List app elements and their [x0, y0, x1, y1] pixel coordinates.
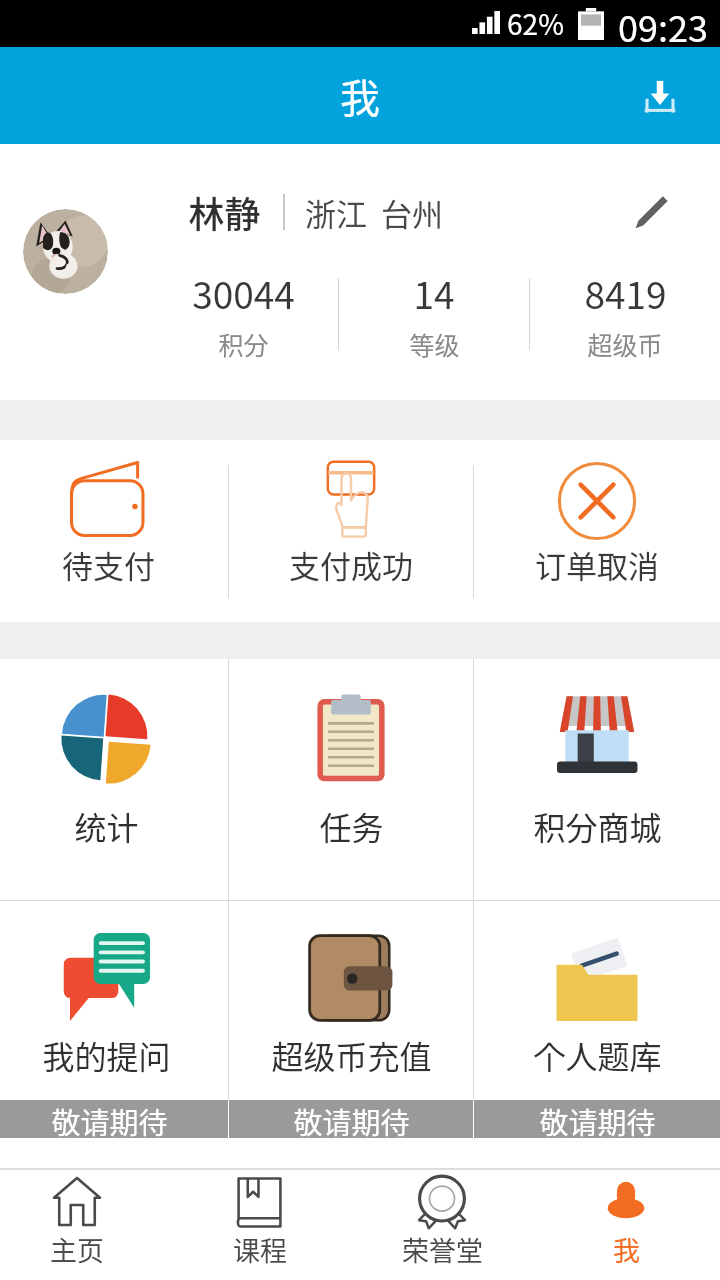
staticText: 超级币充值 [271, 1032, 432, 1078]
button[interactable]: Avatar [23, 209, 108, 294]
button[interactable]: 积分商城 [474, 659, 720, 900]
staticText: 敬请期待 [539, 1100, 656, 1138]
staticText: 积分商城 [533, 803, 662, 849]
button[interactable]: 待支付 [0, 440, 228, 622]
staticText: 我 [340, 67, 380, 125]
button[interactable]: Download [634, 70, 686, 122]
button[interactable]: 14 [339, 259, 529, 369]
staticText: 14 [413, 266, 455, 320]
staticText: 个人题库 [533, 1032, 662, 1078]
button[interactable]: 课程 [167, 1170, 352, 1280]
staticText: 待支付 [62, 542, 155, 587]
staticText: 我 [613, 1230, 640, 1269]
button[interactable]: 支付成功 [229, 440, 473, 622]
button[interactable]: 主页 [0, 1170, 153, 1280]
staticText: 敬请期待 [51, 1100, 168, 1138]
button[interactable]: 30044 [148, 259, 338, 369]
staticText: 任务 [319, 803, 384, 849]
staticText: 62% [507, 3, 564, 44]
staticText: 林静 [188, 186, 261, 238]
button[interactable]: 订单取消 [474, 440, 720, 622]
button[interactable]: 超级币充值 [229, 901, 473, 1100]
staticText: 8419 [584, 266, 667, 320]
button[interactable]: 我的提问 [0, 901, 228, 1100]
button[interactable]: 统计 [0, 659, 228, 900]
staticText: 主页 [50, 1230, 104, 1269]
staticText: 荣誉堂 [402, 1230, 483, 1269]
button[interactable]: 荣誉堂 [352, 1170, 532, 1280]
button[interactable]: 8419 [530, 259, 720, 369]
staticText: 积分 [218, 326, 269, 362]
staticText: 等级 [409, 326, 460, 362]
button[interactable]: Edit profile [624, 184, 680, 240]
staticText: 超级币 [587, 326, 663, 362]
staticText: 浙江 台州 [305, 190, 443, 235]
staticText: 09:23 [618, 0, 708, 47]
staticText: 支付成功 [289, 542, 413, 587]
button[interactable]: 任务 [229, 659, 473, 900]
button[interactable]: 敬请期待 [229, 1100, 473, 1138]
button[interactable]: 个人题库 [474, 901, 720, 1100]
staticText: 课程 [233, 1230, 287, 1269]
button[interactable]: 敬请期待 [0, 1100, 228, 1138]
staticText: 敬请期待 [293, 1100, 410, 1138]
staticText: 订单取消 [535, 542, 659, 587]
button[interactable]: 我 [532, 1170, 720, 1280]
staticText: 统计 [74, 803, 139, 849]
staticText: 30044 [192, 266, 295, 320]
staticText: 我的提问 [42, 1032, 171, 1078]
button[interactable]: 敬请期待 [474, 1100, 720, 1138]
